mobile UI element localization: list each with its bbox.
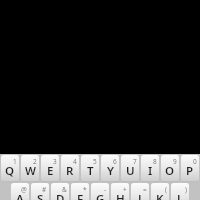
- staticText: @: [21, 185, 27, 194]
- staticText: 3: [53, 157, 57, 166]
- staticText: 4: [73, 157, 77, 166]
- button[interactable]: P: [181, 155, 199, 183]
- button[interactable]: R: [61, 155, 79, 183]
- button[interactable]: Q: [1, 155, 19, 183]
- staticText: L: [177, 191, 184, 200]
- staticText: -: [104, 185, 107, 194]
- button[interactable]: S: [31, 183, 49, 200]
- button[interactable]: A: [11, 183, 29, 200]
- staticText: R: [66, 163, 74, 179]
- staticText: T: [87, 163, 94, 179]
- staticText: S: [37, 191, 44, 200]
- button[interactable]: E: [41, 155, 59, 183]
- staticText: P: [186, 163, 194, 179]
- staticText: +: [123, 185, 127, 194]
- staticText: U: [126, 163, 135, 179]
- button[interactable]: D: [51, 183, 69, 200]
- button[interactable]: J: [131, 183, 149, 200]
- staticText: O: [165, 163, 175, 179]
- staticText: A: [16, 191, 24, 200]
- staticText: K: [156, 191, 164, 200]
- staticText: 8: [153, 157, 157, 166]
- staticText: Y: [107, 163, 114, 179]
- staticText: 9: [173, 157, 177, 166]
- staticText: =: [143, 185, 147, 194]
- button[interactable]: L: [171, 183, 189, 200]
- staticText: F: [77, 191, 84, 200]
- staticText: ): [185, 185, 187, 194]
- button[interactable]: I: [141, 155, 159, 183]
- staticText: &: [62, 185, 67, 194]
- button[interactable]: O: [161, 155, 179, 183]
- button[interactable]: Y: [101, 155, 119, 183]
- button[interactable]: F: [71, 183, 89, 200]
- button[interactable]: H: [111, 183, 129, 200]
- staticText: Q: [5, 163, 15, 179]
- staticText: 2: [33, 157, 37, 166]
- staticText: W: [25, 163, 36, 179]
- staticText: E: [47, 163, 54, 179]
- staticText: *: [83, 185, 87, 194]
- staticText: (: [165, 185, 167, 194]
- staticText: H: [116, 191, 125, 200]
- button[interactable]: T: [81, 155, 99, 183]
- staticText: J: [138, 191, 142, 200]
- staticText: I: [148, 163, 153, 179]
- button[interactable]: U: [121, 155, 139, 183]
- staticText: #: [42, 185, 47, 194]
- staticText: D: [56, 191, 65, 200]
- staticText: 0: [193, 157, 197, 166]
- button[interactable]: K: [151, 183, 169, 200]
- staticText: 5: [93, 157, 97, 166]
- staticText: 7: [133, 157, 137, 166]
- staticText: 6: [113, 157, 117, 166]
- button[interactable]: W: [21, 155, 39, 183]
- staticText: G: [96, 191, 105, 200]
- button[interactable]: G: [91, 183, 109, 200]
- staticText: 1: [13, 157, 17, 166]
